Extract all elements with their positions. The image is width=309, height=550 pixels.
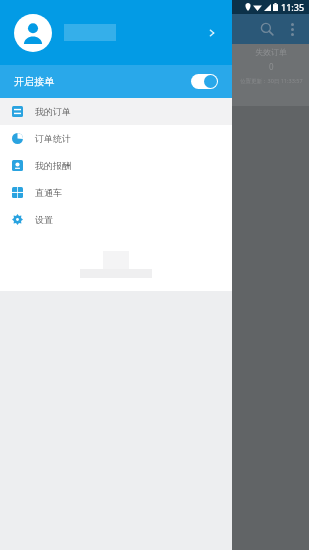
staticText: 0 <box>269 61 274 72</box>
button[interactable]: 订单统计 <box>0 125 232 152</box>
staticText: 我的报酬 <box>35 160 71 171</box>
staticText: 开启接单 <box>14 75 54 88</box>
button[interactable]: 我的订单 <box>0 98 232 125</box>
button[interactable]: Search <box>253 15 281 43</box>
button[interactable]: 我的报酬 <box>0 152 232 179</box>
staticText: 失效订单 <box>255 47 287 57</box>
staticText: 设置 <box>35 214 53 225</box>
button[interactable]: 直通车 <box>0 179 232 206</box>
staticText: 订单统计 <box>35 133 71 144</box>
button[interactable]: 设置 <box>0 206 232 233</box>
staticText: 11:35 <box>281 1 305 13</box>
staticText: 直通车 <box>35 187 62 198</box>
button[interactable]: More options <box>281 18 303 40</box>
button[interactable]: 开启接单 <box>0 65 232 98</box>
button[interactable] <box>0 0 232 65</box>
staticText: 我的订单 <box>35 106 71 117</box>
staticText: 位置更新：30日 11:33:57 <box>240 77 303 85</box>
